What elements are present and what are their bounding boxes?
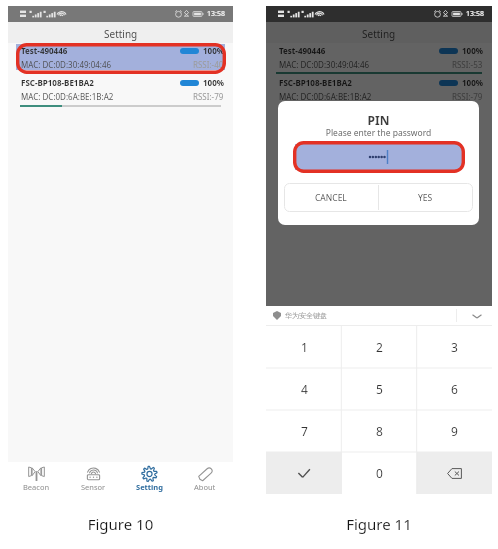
staticText: 8 (376, 423, 383, 439)
staticText: CANCEL (315, 192, 347, 204)
staticText: Please enter the password (278, 127, 479, 139)
button[interactable]: Beacon (8, 462, 65, 494)
staticText: MAC: DC:0D:6A:BE:1B:A2 (279, 91, 372, 102)
staticText: 0 (376, 465, 383, 481)
button[interactable]: 2 (342, 326, 417, 368)
button[interactable]: Test-490446 (274, 44, 484, 70)
button[interactable]: FSC-BP108-BE1BA2 (274, 76, 484, 102)
staticText: 华为安全键盘 (285, 311, 327, 320)
staticText: 100% (462, 77, 483, 88)
staticText: 1 (301, 339, 308, 355)
staticText: Setting (362, 27, 396, 41)
staticText: YES (418, 192, 433, 204)
button[interactable]: Confirm (266, 452, 342, 494)
button[interactable]: Delete (417, 452, 492, 494)
staticText: 3 (451, 339, 458, 355)
staticText: 100% (203, 45, 224, 56)
button[interactable]: 0 (342, 452, 417, 494)
staticText: Figure 10 (8, 514, 233, 534)
button[interactable]: 8 (342, 410, 417, 452)
staticText: FSC-BP108-BE1BA2 (21, 77, 94, 88)
button[interactable]: Setting (121, 462, 177, 494)
staticText: 7 (301, 423, 308, 439)
staticText: Test-490446 (21, 45, 68, 56)
staticText: Figure 11 (266, 514, 492, 534)
staticText: RSSI:-40 (193, 59, 224, 70)
staticText: Setting (104, 27, 138, 41)
button[interactable]: FSC-BP108-BE1BA2 (16, 76, 225, 102)
staticText: 100% (203, 77, 224, 88)
button[interactable]: 9 (417, 410, 492, 452)
button[interactable]: 3 (417, 326, 492, 368)
staticText: Test-490446 (279, 45, 326, 56)
button[interactable]: 6 (417, 368, 492, 410)
staticText: FSC-BP108-BE1BA2 (279, 77, 352, 88)
staticText: 6 (451, 381, 458, 397)
staticText: RSSI:-79 (193, 91, 224, 102)
staticText: Sensor (81, 482, 106, 492)
staticText: About (194, 482, 216, 492)
button[interactable]: CANCEL (284, 183, 378, 212)
button[interactable]: 4 (266, 368, 342, 410)
staticText: MAC: DC:0D:30:49:04:46 (21, 59, 112, 70)
staticText: 13:58 (207, 9, 225, 19)
staticText: RSSI:-79 (452, 91, 483, 102)
staticText: MAC: DC:0D:6A:BE:1B:A2 (21, 91, 114, 102)
staticText: Setting (136, 482, 163, 492)
staticText: 9 (451, 423, 458, 439)
staticText: 13:58 (466, 9, 484, 19)
staticText: 100% (462, 45, 483, 56)
button[interactable]: Test-490446 (16, 44, 225, 70)
staticText: 5 (376, 381, 383, 397)
staticText: 2 (376, 339, 383, 355)
button[interactable] (295, 144, 462, 170)
staticText: 4 (301, 381, 308, 397)
button[interactable]: YES (378, 183, 473, 212)
staticText: PIN (278, 112, 479, 128)
staticText: MAC: DC:0D:30:49:04:46 (279, 59, 370, 70)
button[interactable]: 7 (266, 410, 342, 452)
staticText: Beacon (23, 482, 50, 492)
button[interactable]: 5 (342, 368, 417, 410)
button[interactable]: 1 (266, 326, 342, 368)
button[interactable]: Hide keyboard (469, 308, 485, 324)
staticText: RSSI:-53 (452, 59, 483, 70)
button[interactable]: About (177, 462, 233, 494)
button[interactable]: Sensor (65, 462, 121, 494)
